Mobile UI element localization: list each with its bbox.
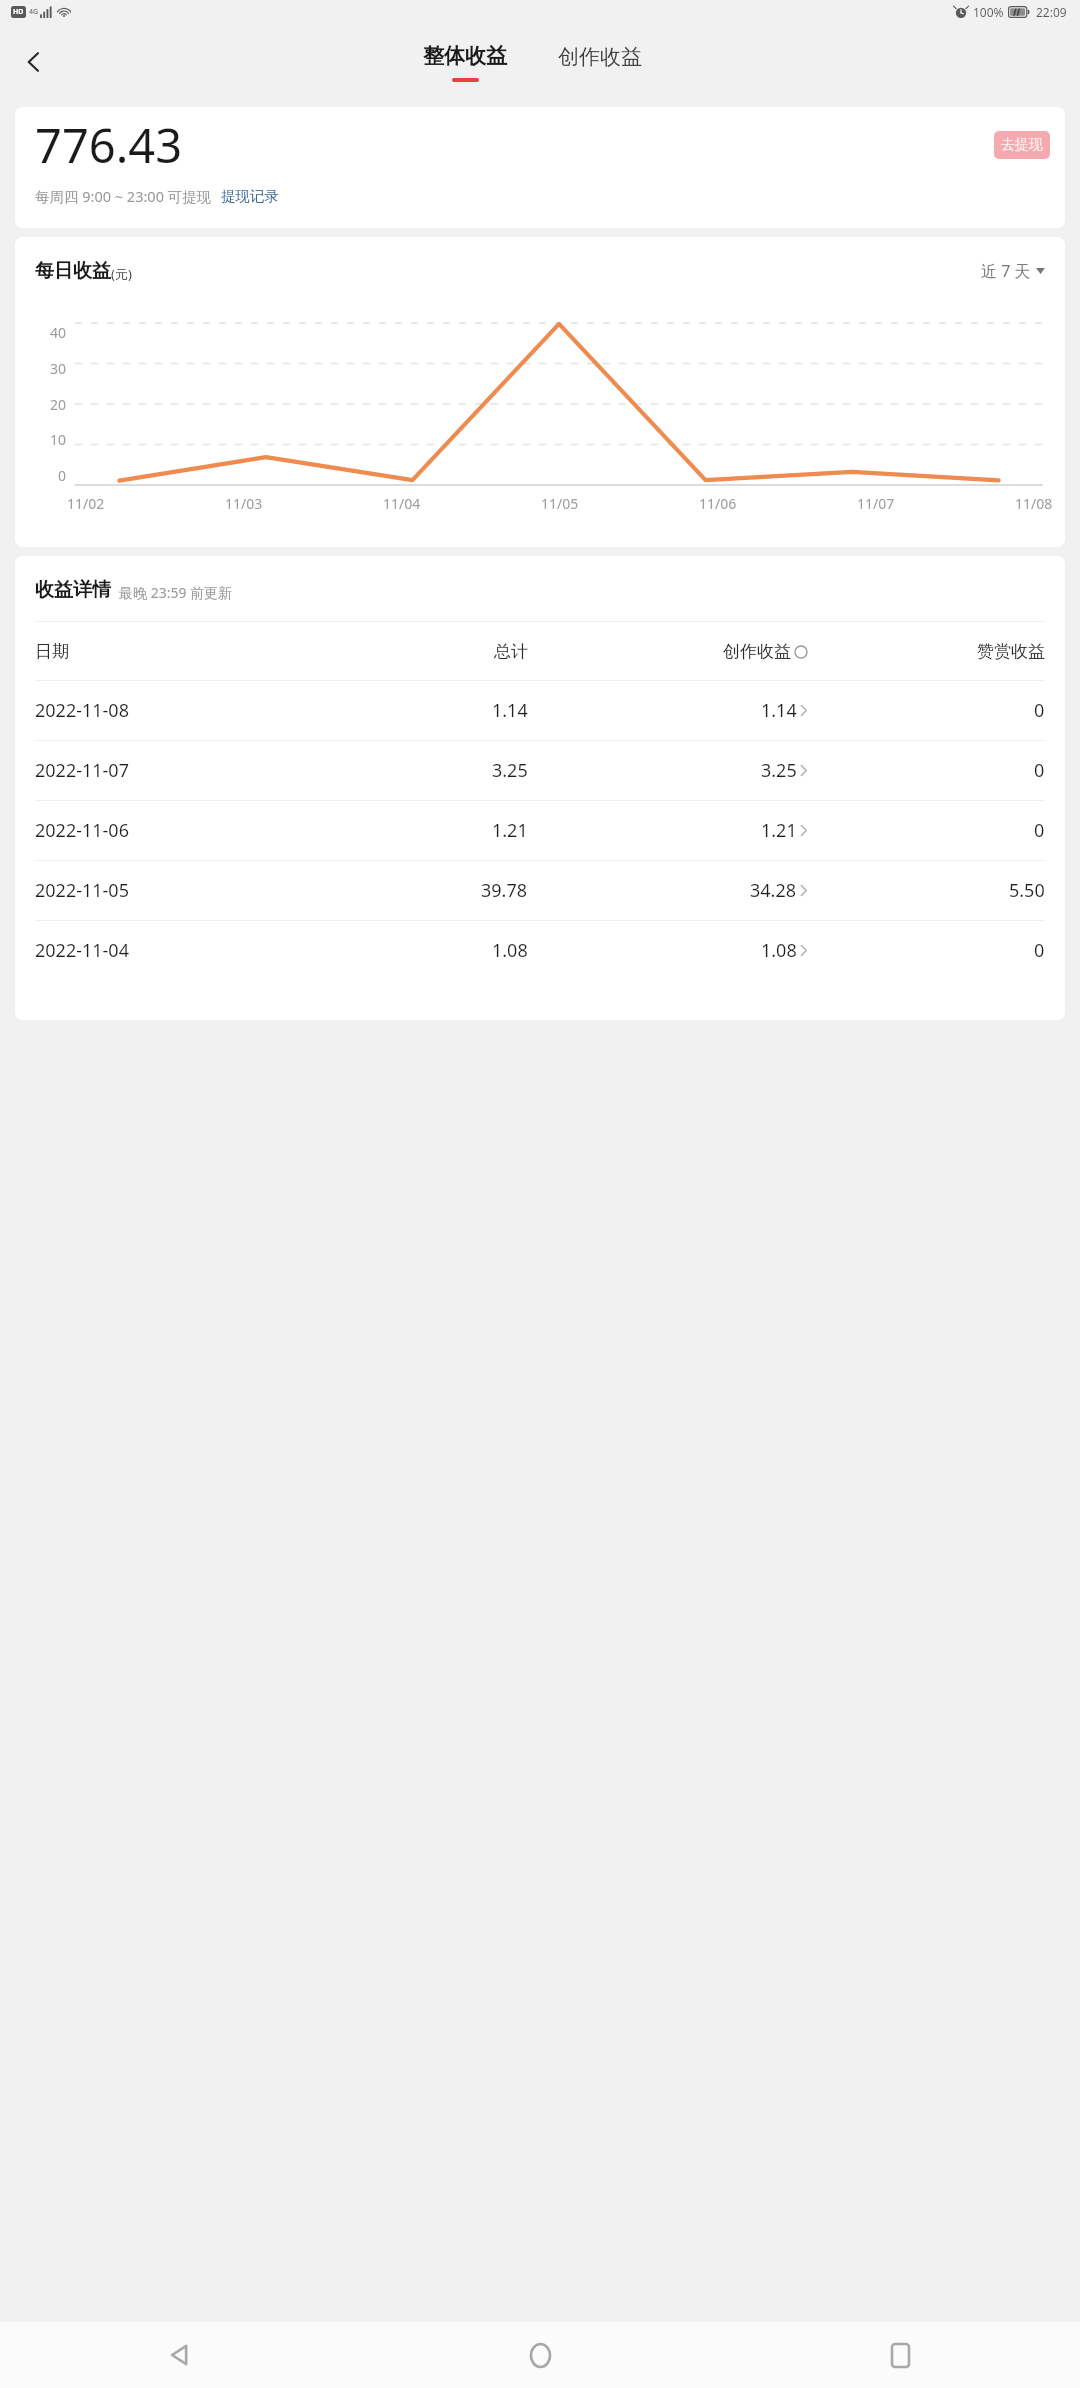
staticText: 0 (1034, 698, 1045, 723)
staticText: 日期 (35, 641, 69, 662)
staticText: 11/03 (225, 494, 263, 513)
button[interactable]: 2022-11-04 (15, 921, 1065, 980)
staticText: 赞赏收益 (977, 641, 1045, 662)
button[interactable]: 去提现 (994, 131, 1050, 159)
staticText: 0 (58, 466, 67, 485)
staticText: 2022-11-07 (35, 758, 129, 783)
button[interactable]: 2022-11-05 (15, 861, 1065, 920)
staticText: 3.25 (761, 758, 797, 783)
staticText: 11/08 (1015, 494, 1053, 513)
button[interactable]: Back (6, 34, 62, 90)
staticText: 1.21 (492, 818, 528, 843)
staticText: 2022-11-08 (35, 698, 129, 723)
staticText: 22:09 (1036, 4, 1067, 20)
staticText: 1.14 (492, 698, 528, 723)
staticText: HD (13, 7, 24, 17)
staticText: 每周四 9:00 ~ 23:00 可提现 (35, 186, 212, 206)
staticText: 34.28 (750, 878, 797, 903)
staticText: 3.25 (492, 758, 528, 783)
staticText: 100% (973, 4, 1004, 20)
button[interactable]: 2022-11-08 (15, 681, 1065, 740)
staticText: 最晚 23:59 前更新 (119, 583, 233, 602)
staticText: 2022-11-04 (35, 938, 129, 963)
other: Help (794, 645, 808, 659)
staticText: 4G (29, 7, 39, 17)
staticText: 776.43 (35, 113, 183, 177)
staticText: 整体收益 (423, 43, 507, 69)
staticText: 0 (1034, 938, 1045, 963)
staticText: 去提现 (1001, 136, 1043, 154)
button[interactable]: Back (0, 2322, 360, 2388)
button[interactable]: 2022-11-06 (15, 801, 1065, 860)
staticText: 1.08 (761, 938, 797, 963)
button[interactable]: Recents (720, 2322, 1080, 2388)
staticText: 1.21 (761, 818, 797, 843)
staticText: 11/06 (699, 494, 737, 513)
staticText: 5.50 (1009, 878, 1045, 903)
staticText: 收益详情 (35, 578, 111, 602)
staticText: (元) (111, 265, 132, 283)
staticText: 0 (1034, 818, 1045, 843)
staticText: 30 (50, 359, 67, 378)
staticText: 1.08 (492, 938, 528, 963)
staticText: 40 (50, 323, 67, 342)
staticText: 11/02 (67, 494, 105, 513)
button[interactable]: 提现记录 (221, 187, 279, 205)
button[interactable]: 2022-11-07 (15, 741, 1065, 800)
staticText: 11/05 (541, 494, 579, 513)
staticText: 39.78 (481, 878, 528, 903)
button[interactable]: 整体收益 (413, 43, 517, 82)
staticText: 11/07 (857, 494, 895, 513)
staticText: 提现记录 (221, 187, 279, 205)
staticText: 总计 (494, 641, 528, 662)
staticText: 10 (50, 430, 67, 449)
staticText: 0 (1034, 758, 1045, 783)
button[interactable]: 近 7 天 (981, 260, 1045, 282)
staticText: 创作收益 (723, 641, 791, 662)
staticText: 每日收益 (35, 259, 111, 283)
staticText: 近 7 天 (981, 260, 1031, 282)
staticText: 2022-11-05 (35, 878, 129, 903)
button[interactable]: Home (360, 2322, 720, 2388)
staticText: 1.14 (761, 698, 797, 723)
staticText: 20 (50, 395, 67, 414)
staticText: 11/04 (383, 494, 421, 513)
staticText: 创作收益 (558, 44, 642, 70)
button[interactable]: 创作收益 (548, 50, 652, 76)
staticText: 2022-11-06 (35, 818, 129, 843)
